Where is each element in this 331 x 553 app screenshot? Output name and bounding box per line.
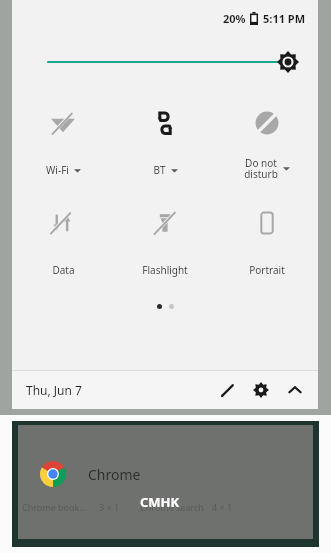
staticText: Do not disturb — [244, 156, 278, 181]
staticText: Data — [52, 263, 75, 277]
staticText: Thu, Jun 7 — [26, 382, 82, 398]
button[interactable]: Portrait — [216, 194, 318, 294]
button[interactable]: Wi-Fi — [12, 94, 114, 194]
button[interactable]: Settings — [244, 373, 278, 407]
staticText: 20% — [223, 11, 246, 26]
button[interactable]: Brightness — [12, 36, 318, 88]
button[interactable]: Flashlight — [114, 194, 216, 294]
staticText: 3 × 1 — [99, 501, 120, 513]
staticText: CMHK — [140, 493, 180, 511]
button[interactable]: Collapse — [278, 373, 312, 407]
button[interactable]: Do not disturb — [216, 94, 318, 194]
staticText: Chrome — [88, 465, 141, 484]
button[interactable]: BT — [114, 94, 216, 194]
staticText: 4 × 1 — [212, 501, 233, 513]
staticText: Chrome search — [140, 501, 204, 513]
staticText: Portrait — [249, 263, 285, 277]
staticText: Wi-Fi — [46, 163, 69, 177]
staticText: 5:11 PM — [263, 11, 306, 26]
staticText: Chrome book… — [22, 501, 87, 513]
button[interactable]: Edit — [210, 373, 244, 407]
button[interactable]: Data — [12, 194, 114, 294]
staticText: BT — [153, 163, 166, 177]
button[interactable]: Chrome — [18, 453, 296, 495]
staticText: Flashlight — [142, 263, 188, 277]
